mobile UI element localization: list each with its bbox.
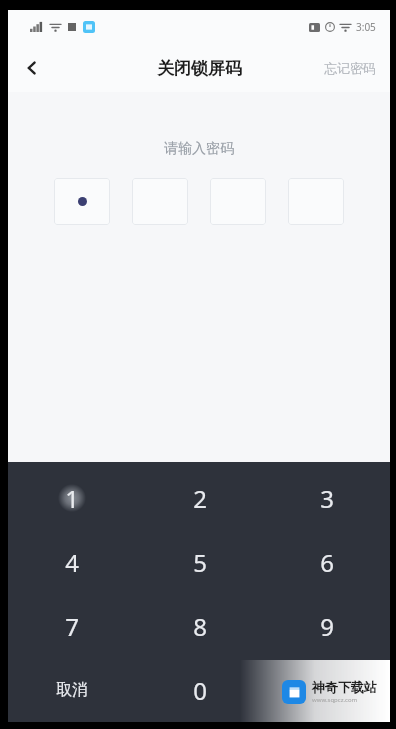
button[interactable]: 8 (136, 594, 263, 658)
staticText: 9 (320, 610, 334, 643)
button[interactable]: 0 (136, 658, 263, 722)
staticText: 8 (193, 610, 207, 643)
button[interactable]: 取消 (8, 658, 136, 722)
staticText: 4 (65, 546, 79, 579)
staticText: 0 (193, 674, 207, 707)
staticText: 7 (65, 610, 79, 643)
button[interactable]: 2 (136, 466, 263, 530)
staticText: 3 (320, 482, 334, 515)
button[interactable]: 5 (136, 530, 263, 594)
staticText: 忘记密码 (324, 60, 376, 76)
staticText: 5 (193, 546, 207, 579)
button[interactable]: 1 (8, 466, 136, 530)
staticText: www.sqpcz.com (312, 696, 358, 704)
staticText: 3:05 (356, 20, 376, 34)
staticText: 神奇下载站 (312, 679, 377, 695)
button[interactable]: 9 (263, 594, 390, 658)
staticText: 1 (65, 482, 79, 515)
button[interactable]: PIN digit 3 (210, 178, 266, 225)
staticText: 请输入密码 (164, 140, 234, 158)
button[interactable]: Back (8, 44, 56, 92)
button[interactable]: 4 (8, 530, 136, 594)
button[interactable]: 忘记密码 (310, 44, 390, 92)
staticText: 2 (193, 482, 207, 515)
staticText: 关闭锁屏码 (157, 58, 242, 79)
button[interactable]: 6 (263, 530, 390, 594)
button[interactable]: PIN digit 1 (54, 178, 110, 225)
button[interactable]: PIN digit 2 (132, 178, 188, 225)
staticText: 取消 (56, 680, 88, 700)
button[interactable]: 7 (8, 594, 136, 658)
button[interactable]: PIN digit 4 (288, 178, 344, 225)
button[interactable]: 3 (263, 466, 390, 530)
staticText: 6 (320, 546, 334, 579)
